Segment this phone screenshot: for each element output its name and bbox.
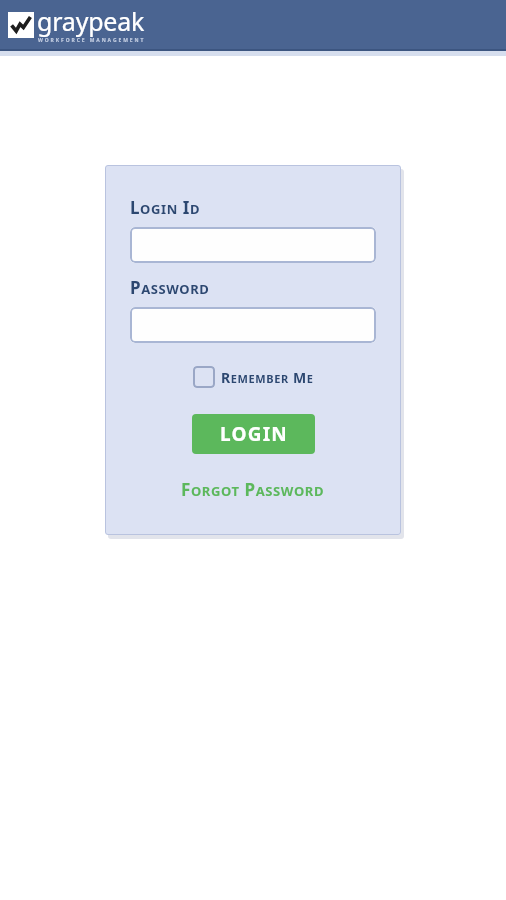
staticText: PASSWORD — [130, 276, 210, 299]
button[interactable]: FORGOT PASSWORD — [175, 476, 331, 503]
staticText: graypeak — [37, 4, 145, 38]
staticText: LOGIN ID — [130, 196, 201, 219]
button[interactable] — [130, 227, 376, 263]
staticText: FORGOT PASSWORD — [181, 478, 325, 501]
staticText: REMEMBER ME — [221, 368, 314, 387]
button[interactable]: REMEMBER ME — [191, 364, 316, 390]
staticText: W O R K F O R C E M A N A G E M E N T — [38, 37, 144, 44]
staticText: LOGIN — [220, 421, 288, 447]
button[interactable]: LOGIN — [192, 414, 315, 454]
button[interactable] — [130, 307, 376, 343]
